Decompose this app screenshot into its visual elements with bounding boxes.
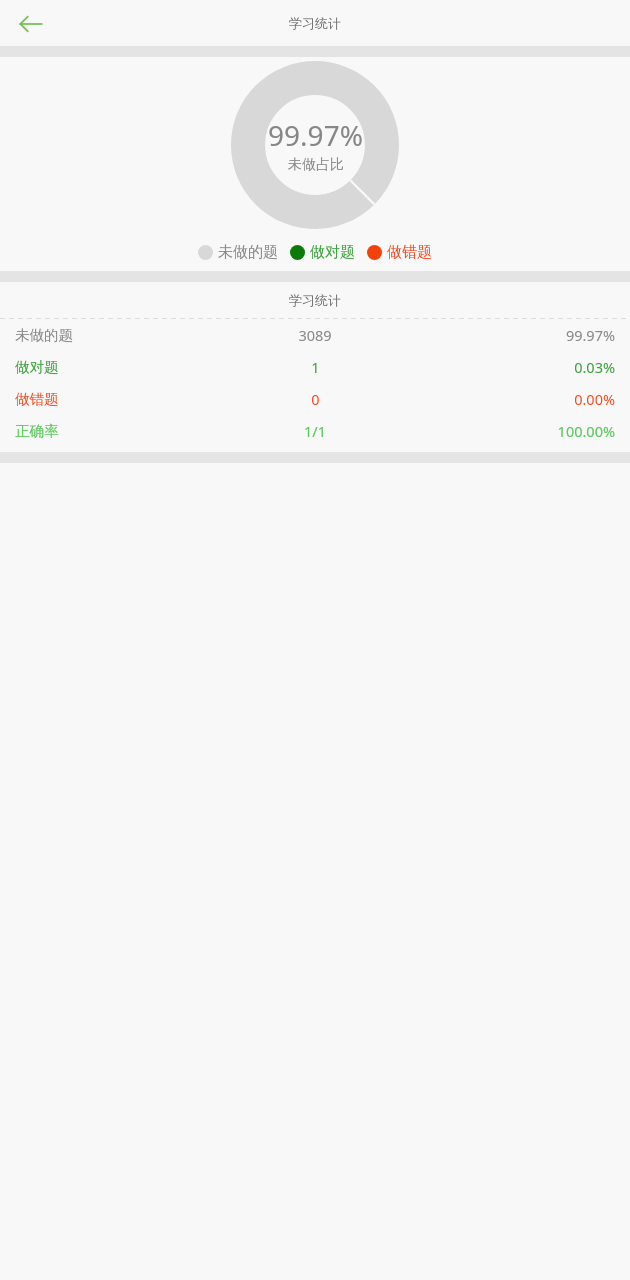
staticText: 99.97% [268, 116, 363, 154]
button[interactable]: Back [8, 1, 53, 46]
staticText: 正确率 [15, 422, 59, 440]
staticText: 1 [311, 357, 320, 377]
staticText: 0.03% [574, 357, 615, 377]
staticText: 3089 [298, 325, 332, 345]
staticText: 100.00% [557, 421, 615, 441]
staticText: 学习统计 [289, 292, 341, 308]
staticText: 做对题 [310, 243, 355, 262]
staticText: 做错题 [15, 390, 59, 408]
staticText: 做对题 [15, 358, 59, 376]
staticText: 0 [311, 389, 320, 409]
staticText: 未做占比 [288, 156, 344, 174]
staticText: 做错题 [387, 243, 432, 262]
button[interactable]: 做对题 [290, 243, 355, 262]
staticText: 99.97% [565, 325, 615, 345]
button[interactable]: 未做的题 [198, 243, 278, 262]
staticText: 学习统计 [289, 15, 341, 31]
staticText: 1/1 [304, 421, 326, 441]
staticText: 0.00% [574, 389, 615, 409]
button[interactable]: 做对题 [0, 351, 630, 383]
button[interactable]: 正确率 [0, 415, 630, 447]
staticText: 未做的题 [218, 243, 278, 262]
staticText: 未做的题 [15, 326, 73, 344]
button[interactable]: 做错题 [0, 383, 630, 415]
button[interactable]: 做错题 [367, 243, 432, 262]
button[interactable]: 未做的题 [0, 319, 630, 351]
